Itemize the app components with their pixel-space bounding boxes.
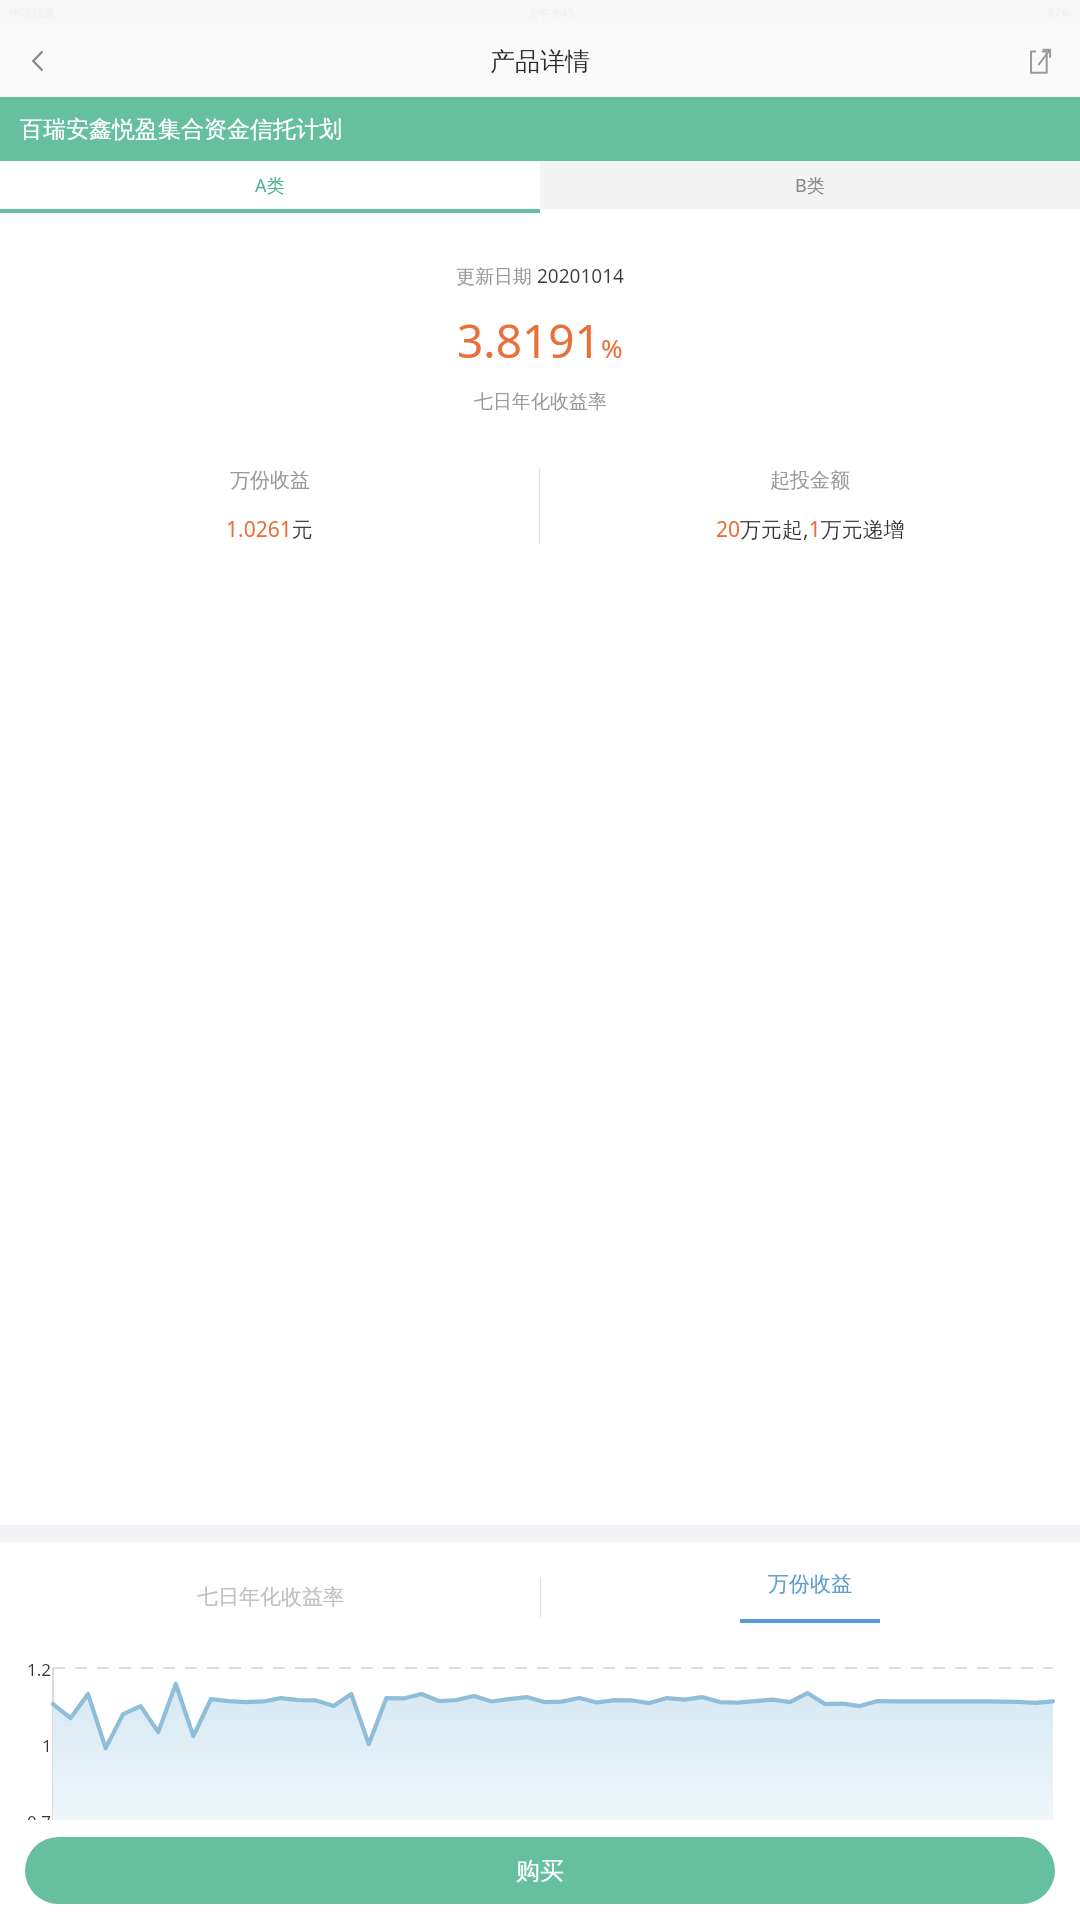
staticText: 1 (42, 1734, 52, 1757)
staticText: 购买 (516, 1856, 564, 1886)
button[interactable]: A类 (0, 161, 540, 209)
staticText: 百瑞安鑫悦盈集合资金信托计划 (20, 115, 342, 144)
staticText: 20万元起,1万元递增 (716, 515, 905, 544)
staticText: 0.7 (27, 1810, 52, 1820)
staticText: 中国联通 (10, 6, 54, 20)
button[interactable]: 购买 (25, 1837, 1055, 1904)
staticText: A类 (255, 173, 285, 198)
button[interactable]: B类 (540, 161, 1080, 209)
staticText: 万份收益 (230, 468, 310, 493)
staticText: 七日年化收益率 (474, 390, 607, 414)
staticText: 产品详情 (490, 46, 590, 77)
staticText: 起投金额 (770, 468, 850, 493)
staticText: 更新日期 20201014 (456, 263, 624, 289)
button[interactable]: Back (14, 37, 62, 85)
button[interactable]: 万份收益 (540, 1542, 1080, 1652)
staticText: 1.0261元 (226, 515, 313, 544)
staticText: B类 (795, 173, 825, 198)
staticText: 1.2 (27, 1658, 52, 1681)
staticText: 七日年化收益率 (197, 1584, 344, 1610)
button[interactable]: Share (1016, 37, 1064, 85)
staticText: 3.8191% (457, 309, 623, 372)
staticText: 万份收益 (768, 1571, 852, 1597)
button[interactable]: 七日年化收益率 (0, 1542, 540, 1652)
